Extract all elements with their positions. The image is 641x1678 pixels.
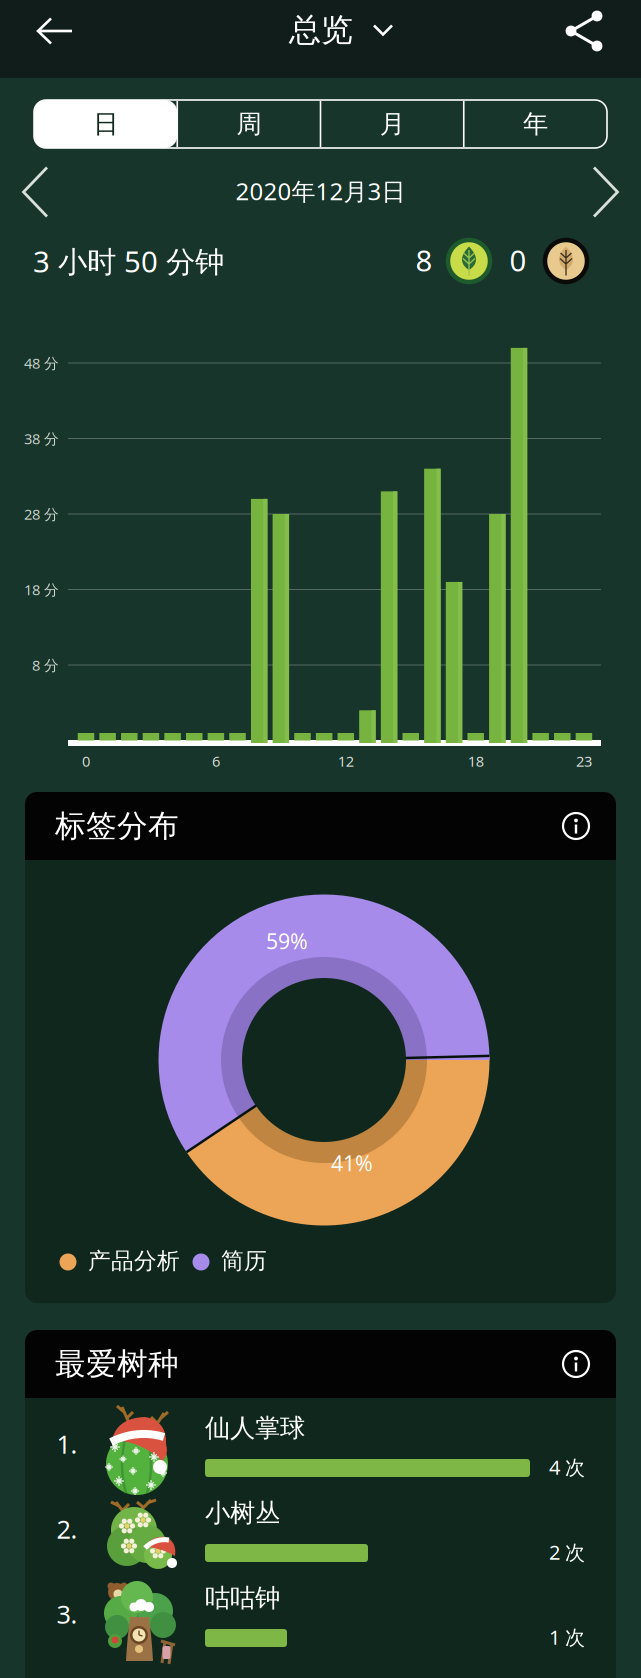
staticText: 2 次 <box>549 1539 585 1565</box>
staticText: 3. <box>56 1597 77 1631</box>
staticText: 0 <box>509 240 526 279</box>
staticText: 23 <box>576 751 592 771</box>
button[interactable]: Previous day <box>22 166 50 218</box>
button[interactable]: Back <box>32 9 78 53</box>
staticText: 1. <box>56 1427 77 1461</box>
staticText: 1 次 <box>549 1624 585 1650</box>
staticText: 月 <box>380 108 405 139</box>
button[interactable]: 周 <box>177 100 320 148</box>
staticText: 28 分 <box>24 504 59 524</box>
staticText: 周 <box>236 108 261 139</box>
staticText: 3 小时 50 分钟 <box>33 241 224 280</box>
staticText: 8 <box>415 240 432 279</box>
staticText: 4 次 <box>549 1454 585 1480</box>
staticText: 标签分布 <box>55 807 179 845</box>
staticText: 日 <box>93 108 118 139</box>
staticText: 2. <box>56 1512 77 1546</box>
staticText: 0 <box>82 751 90 771</box>
staticText: 12 <box>338 751 354 771</box>
staticText: 18 分 <box>24 580 59 599</box>
button[interactable]: Info <box>556 1344 596 1384</box>
button[interactable]: Info <box>556 806 596 846</box>
staticText: 48 分 <box>24 353 59 373</box>
staticText: 产品分析 <box>88 1247 180 1275</box>
button[interactable]: 年 <box>464 100 607 148</box>
staticText: 简历 <box>221 1247 267 1275</box>
button[interactable]: 日 <box>34 100 177 148</box>
button[interactable]: Share <box>560 7 608 55</box>
staticText: 最爱树种 <box>55 1345 179 1383</box>
button[interactable]: 总览 <box>289 10 393 50</box>
button[interactable]: 月 <box>320 100 464 148</box>
staticText: 41% <box>331 1149 373 1177</box>
staticText: 6 <box>212 751 220 771</box>
staticText: 38 分 <box>24 429 59 448</box>
staticText: 8 分 <box>32 655 59 675</box>
staticText: 2020年12月3日 <box>235 175 405 207</box>
staticText: 总览 <box>289 10 353 50</box>
staticText: 年 <box>523 108 548 139</box>
staticText: 小树丛 <box>205 1497 280 1528</box>
staticText: 仙人掌球 <box>205 1412 305 1443</box>
staticText: 咕咕钟 <box>205 1582 280 1613</box>
staticText: 59% <box>266 927 308 955</box>
button[interactable]: Next day <box>591 166 619 218</box>
staticText: 18 <box>468 751 484 771</box>
